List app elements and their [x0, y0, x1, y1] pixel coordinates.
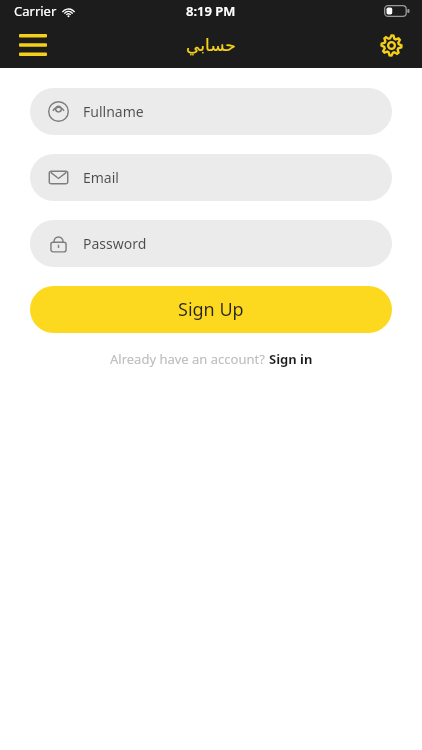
button[interactable]: Settings — [374, 28, 408, 62]
staticText: Carrier — [14, 2, 57, 20]
button[interactable]: Fullname — [30, 88, 392, 135]
button[interactable]: Menu — [16, 28, 50, 62]
button[interactable]: Sign Up — [30, 286, 392, 333]
staticText: Sign Up — [178, 297, 244, 322]
staticText: Fullname — [83, 102, 144, 121]
button[interactable]: Sign in — [269, 350, 313, 368]
staticText: Already have an account? — [110, 350, 269, 368]
staticText: 8:19 PM — [186, 2, 236, 20]
button[interactable]: Email — [30, 154, 392, 201]
staticText: Sign in — [269, 350, 313, 368]
staticText: Email — [83, 168, 119, 187]
staticText: حسابي — [186, 35, 236, 55]
staticText: Password — [83, 234, 147, 253]
button[interactable]: Password — [30, 220, 392, 267]
